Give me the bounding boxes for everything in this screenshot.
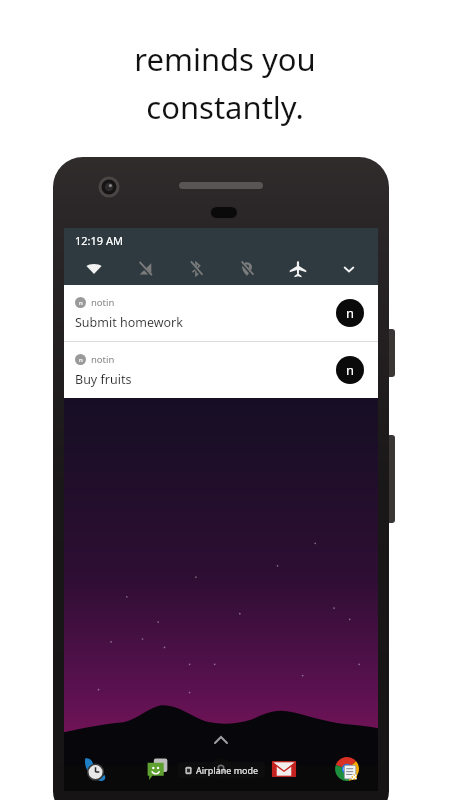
staticText: n <box>346 361 355 379</box>
button[interactable]: Messages <box>126 749 189 789</box>
button[interactable]: Open app drawer <box>210 729 232 751</box>
button[interactable]: Mobile data off <box>119 252 170 285</box>
staticText: notin <box>91 296 115 309</box>
staticText: Buy fruits <box>75 371 132 388</box>
button[interactable]: Notin <box>189 749 252 789</box>
button[interactable]: Chrome <box>315 749 378 789</box>
button[interactable]: Location off <box>221 252 272 285</box>
button[interactable]: n <box>64 342 378 398</box>
button[interactable]: Gmail <box>252 749 315 789</box>
staticText: reminds you <box>134 38 316 80</box>
button[interactable]: Expand quick settings <box>323 252 374 285</box>
staticText: n <box>79 356 83 364</box>
button[interactable]: Phone <box>64 749 126 789</box>
staticText: constantly. <box>146 86 304 128</box>
staticText: n <box>79 299 83 307</box>
button[interactable]: Wi-Fi <box>68 252 119 285</box>
staticText: notin <box>91 353 115 366</box>
staticText: 12:19 AM <box>75 233 123 248</box>
staticText: n <box>346 304 355 322</box>
button[interactable]: Bluetooth off <box>170 252 221 285</box>
button[interactable]: n <box>64 285 378 341</box>
button[interactable]: Airplane mode <box>272 252 323 285</box>
staticText: Submit homework <box>75 314 183 331</box>
staticText: Airplane mode <box>196 764 259 776</box>
